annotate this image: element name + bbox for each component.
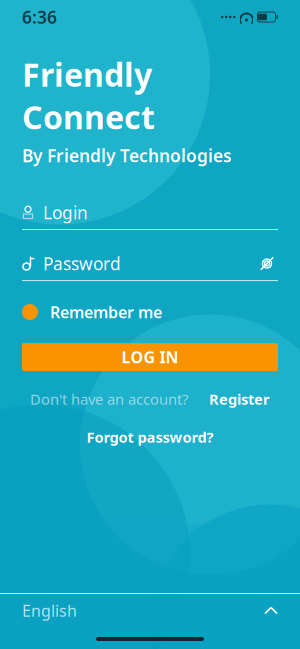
button[interactable]: English bbox=[22, 594, 278, 627]
staticText: By Friendly Technologies bbox=[22, 144, 232, 167]
staticText: Forgot password? bbox=[86, 427, 213, 447]
staticText: Login bbox=[43, 201, 88, 224]
staticText: Remember me bbox=[50, 301, 162, 323]
staticText: Don't have an account? bbox=[30, 389, 188, 409]
staticText: Register bbox=[209, 389, 270, 409]
staticText: Password bbox=[43, 252, 121, 275]
staticText: LOG IN bbox=[121, 346, 178, 368]
staticText: English bbox=[22, 600, 77, 621]
staticText: 6:36 bbox=[22, 5, 57, 28]
button[interactable]: Show password bbox=[256, 253, 278, 273]
button[interactable]: Don't have an account? bbox=[30, 389, 188, 409]
button[interactable]: Register bbox=[209, 389, 270, 409]
button[interactable]: Forgot password? bbox=[86, 428, 213, 446]
button[interactable]: LOG IN bbox=[22, 343, 278, 371]
staticText: Friendly Connect bbox=[22, 53, 155, 138]
button[interactable]: Remember me bbox=[22, 301, 278, 323]
